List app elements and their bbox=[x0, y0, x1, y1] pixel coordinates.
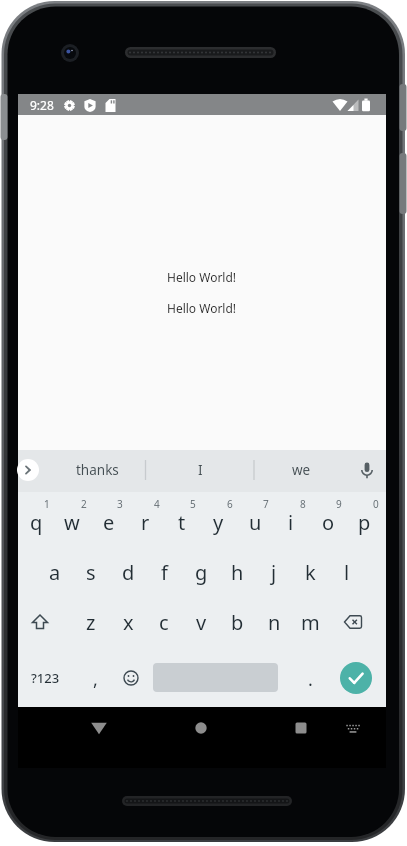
staticText: 4 bbox=[154, 497, 160, 511]
staticText: p bbox=[358, 509, 371, 536]
button[interactable]: I bbox=[154, 450, 246, 490]
staticText: a bbox=[49, 559, 61, 586]
staticText: z bbox=[86, 609, 96, 636]
staticText: b bbox=[231, 609, 244, 636]
staticText: m bbox=[301, 609, 320, 636]
staticText: i bbox=[288, 509, 294, 536]
button[interactable]: l bbox=[329, 547, 365, 597]
staticText: g bbox=[195, 559, 208, 586]
button[interactable]: thanks bbox=[51, 450, 143, 490]
button[interactable]: g bbox=[183, 547, 219, 597]
button[interactable] bbox=[16, 597, 64, 647]
staticText: l bbox=[344, 559, 350, 586]
staticText: ?123 bbox=[31, 669, 60, 687]
button[interactable]: w bbox=[54, 497, 90, 547]
staticText: r bbox=[141, 509, 150, 536]
button[interactable]: t bbox=[164, 497, 200, 547]
button[interactable]: o bbox=[310, 497, 346, 547]
staticText: e bbox=[103, 509, 115, 536]
staticText: 5 bbox=[190, 497, 196, 511]
staticText: o bbox=[322, 509, 335, 536]
button[interactable]: b bbox=[219, 597, 255, 647]
button[interactable]: h bbox=[219, 547, 255, 597]
button[interactable]: q bbox=[18, 497, 54, 547]
button[interactable] bbox=[335, 711, 371, 747]
button[interactable]: , bbox=[78, 657, 112, 701]
staticText: k bbox=[305, 559, 316, 586]
staticText: d bbox=[122, 559, 135, 586]
button[interactable]: m bbox=[292, 597, 328, 647]
staticText: v bbox=[196, 609, 207, 636]
button[interactable]: a bbox=[37, 547, 73, 597]
staticText: 3 bbox=[117, 497, 123, 511]
staticText: q bbox=[30, 509, 43, 536]
button[interactable]: . bbox=[293, 657, 327, 701]
button[interactable] bbox=[329, 597, 377, 647]
staticText: 1 bbox=[44, 497, 50, 511]
button[interactable]: s bbox=[73, 547, 109, 597]
button[interactable]: y bbox=[200, 497, 236, 547]
button[interactable]: u bbox=[237, 497, 273, 547]
staticText: 0 bbox=[373, 497, 379, 511]
staticText: Hello World! bbox=[167, 300, 237, 316]
staticText: thanks bbox=[76, 461, 119, 479]
staticText: t bbox=[178, 509, 186, 536]
button[interactable]: v bbox=[183, 597, 219, 647]
button[interactable]: r bbox=[127, 497, 163, 547]
staticText: 6 bbox=[227, 497, 233, 511]
staticText: h bbox=[231, 559, 244, 586]
staticText: we bbox=[292, 461, 311, 479]
staticText: s bbox=[86, 559, 96, 586]
button[interactable]: p bbox=[346, 497, 382, 547]
staticText: n bbox=[268, 609, 281, 636]
staticText: 9 bbox=[336, 497, 342, 511]
button[interactable] bbox=[350, 451, 384, 489]
staticText: w bbox=[64, 509, 80, 536]
button[interactable]: c bbox=[146, 597, 182, 647]
button[interactable]: j bbox=[256, 547, 292, 597]
staticText: c bbox=[159, 609, 169, 636]
staticText: 9:28 bbox=[30, 97, 54, 113]
staticText: , bbox=[93, 667, 98, 692]
staticText: I bbox=[198, 461, 203, 479]
staticText: u bbox=[249, 509, 262, 536]
button[interactable]: f bbox=[146, 547, 182, 597]
button[interactable]: ?123 bbox=[18, 652, 72, 704]
button[interactable]: k bbox=[292, 547, 328, 597]
staticText: . bbox=[308, 667, 313, 692]
button[interactable]: we bbox=[264, 450, 338, 490]
button[interactable]: n bbox=[256, 597, 292, 647]
button[interactable] bbox=[75, 708, 123, 748]
staticText: x bbox=[123, 609, 134, 636]
staticText: 7 bbox=[263, 497, 269, 511]
button[interactable]: e bbox=[91, 497, 127, 547]
staticText: 8 bbox=[300, 497, 306, 511]
button[interactable] bbox=[113, 653, 149, 703]
button[interactable]: z bbox=[73, 597, 109, 647]
staticText: Hello World! bbox=[167, 269, 237, 285]
staticText: y bbox=[213, 509, 224, 536]
button[interactable] bbox=[277, 708, 325, 748]
button[interactable] bbox=[340, 662, 372, 694]
staticText: f bbox=[161, 559, 168, 586]
staticText: j bbox=[271, 559, 277, 586]
staticText: 2 bbox=[81, 497, 87, 511]
button[interactable]: d bbox=[110, 547, 146, 597]
button[interactable]: i bbox=[273, 497, 309, 547]
button[interactable]: x bbox=[110, 597, 146, 647]
button[interactable] bbox=[177, 708, 225, 748]
button[interactable] bbox=[13, 455, 43, 485]
